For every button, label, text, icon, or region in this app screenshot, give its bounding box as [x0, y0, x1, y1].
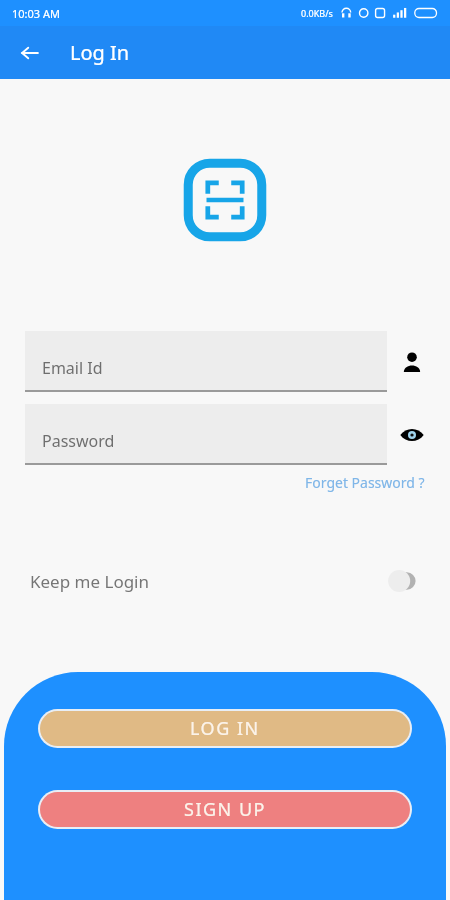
staticText: Password	[42, 430, 115, 452]
button[interactable]: Account	[396, 346, 428, 378]
button[interactable]: Email Id	[25, 331, 387, 392]
button[interactable]: SIGN UP	[40, 792, 410, 827]
button[interactable]: Forget Password ?	[305, 473, 425, 492]
staticText: Email Id	[42, 357, 103, 379]
button[interactable]: Show password	[396, 419, 428, 451]
staticText: LOG IN	[190, 716, 260, 741]
button[interactable]: LOG IN	[40, 711, 410, 746]
button[interactable]: Back	[14, 37, 46, 69]
staticText: Log In	[70, 39, 130, 66]
button[interactable]: Password	[25, 404, 387, 465]
staticText: Forget Password ?	[305, 473, 425, 492]
staticText: 0.0KB/s	[301, 7, 333, 19]
staticText: Keep me Login	[30, 570, 150, 593]
staticText: 10:03 AM	[12, 6, 60, 21]
staticText: SIGN UP	[184, 797, 266, 822]
button[interactable]: Keep me Login toggle	[381, 568, 425, 594]
